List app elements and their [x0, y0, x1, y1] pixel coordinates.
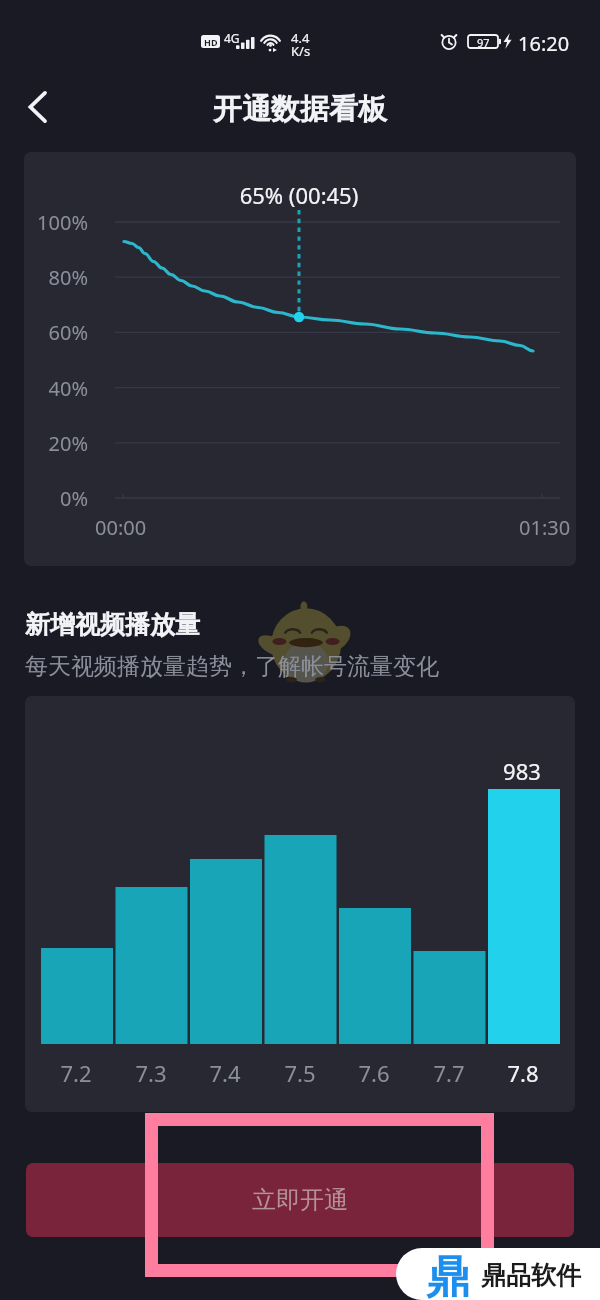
staticText: 97: [477, 35, 490, 48]
staticText: 7.7: [413, 1058, 485, 1088]
staticText: 40%: [24, 375, 88, 402]
staticText: 7.2: [40, 1058, 112, 1088]
staticText: 新增视频播放量: [25, 609, 200, 640]
staticText: 7.4: [189, 1058, 261, 1088]
staticText: 鼎品软件: [481, 1260, 581, 1291]
staticText: 开通数据看板: [0, 91, 600, 128]
staticText: 65% (00:45): [179, 180, 419, 210]
staticText: 0%: [24, 485, 88, 512]
staticText: 80%: [24, 264, 88, 291]
staticText: 16:20: [518, 30, 570, 57]
staticText: 4G: [224, 30, 240, 46]
staticText: 20%: [24, 430, 88, 457]
staticText: 7.6: [338, 1058, 410, 1088]
button[interactable]: 立即开通: [26, 1163, 574, 1237]
staticText: K/s: [291, 42, 311, 60]
staticText: 每天视频播放量趋势，了解帐号流量变化: [25, 652, 439, 681]
staticText: 鼎: [426, 1250, 470, 1300]
staticText: 4.4: [291, 29, 310, 47]
staticText: 7.5: [264, 1058, 336, 1088]
staticText: 7.8: [487, 1058, 559, 1088]
staticText: 7.3: [115, 1058, 187, 1088]
staticText: 60%: [24, 319, 88, 346]
staticText: 01:30: [519, 514, 571, 541]
staticText: 983: [486, 756, 558, 786]
staticText: 00:00: [95, 514, 147, 541]
staticText: HD: [204, 36, 218, 48]
staticText: 立即开通: [252, 1185, 348, 1215]
staticText: 100%: [24, 209, 88, 236]
button[interactable]: Back: [10, 79, 66, 135]
